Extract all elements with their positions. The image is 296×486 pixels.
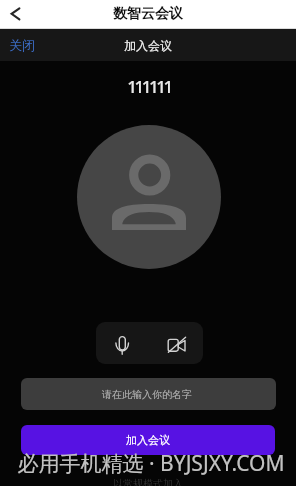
- staticText: 关闭: [9, 37, 35, 53]
- button[interactable]: 关闭: [9, 37, 35, 53]
- staticText: 数智云会议: [113, 5, 183, 23]
- button[interactable]: 加入会议: [21, 425, 275, 455]
- button[interactable]: Back: [0, 0, 28, 28]
- button[interactable]: Toggle microphone: [100, 327, 148, 359]
- staticText: 必用手机精选 · BYJSJXY.COM: [3, 449, 296, 478]
- button[interactable]: 请在此输入你的名字: [21, 378, 276, 410]
- staticText: 加入会议: [126, 433, 170, 447]
- staticText: 以常规模式加入: [113, 477, 183, 486]
- staticText: 111111: [1, 75, 296, 98]
- staticText: 加入会议: [124, 38, 172, 53]
- button[interactable]: Toggle camera: [151, 327, 199, 359]
- staticText: 请在此输入你的名字: [102, 388, 192, 401]
- button[interactable]: 以常规模式加入: [0, 477, 296, 486]
